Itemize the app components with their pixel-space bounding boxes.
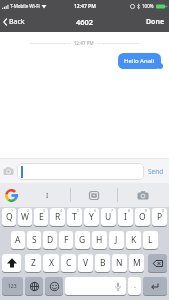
button[interactable]: U bbox=[101, 208, 116, 226]
button[interactable] bbox=[45, 277, 63, 295]
button[interactable] bbox=[25, 277, 43, 295]
button[interactable]: S bbox=[27, 231, 41, 249]
button[interactable]: V bbox=[78, 254, 93, 272]
staticText: S bbox=[32, 234, 37, 246]
staticText: T bbox=[72, 211, 77, 223]
button[interactable]: D bbox=[43, 231, 57, 249]
staticText: Back bbox=[9, 17, 25, 27]
staticText: 2 bbox=[27, 208, 30, 213]
button[interactable]: A bbox=[11, 231, 25, 249]
staticText: B bbox=[100, 257, 106, 269]
staticText: R bbox=[55, 211, 61, 223]
button[interactable]: G bbox=[75, 231, 90, 249]
button[interactable]: R bbox=[50, 208, 65, 226]
staticText: . bbox=[134, 281, 136, 291]
staticText: 6 bbox=[94, 208, 97, 213]
button[interactable]: W bbox=[18, 208, 32, 226]
button[interactable]: . bbox=[128, 277, 141, 295]
staticText: 12:47 PM bbox=[74, 3, 96, 10]
staticText: 9 bbox=[145, 208, 148, 213]
staticText: Send bbox=[148, 167, 164, 176]
staticText: I bbox=[124, 211, 127, 223]
button[interactable]: N bbox=[112, 254, 127, 272]
staticText: O bbox=[139, 211, 146, 223]
staticText: K bbox=[131, 234, 137, 246]
staticText: W bbox=[21, 211, 29, 223]
button[interactable]: L bbox=[143, 231, 158, 249]
staticText: Y bbox=[89, 211, 94, 223]
staticText: G bbox=[79, 234, 86, 246]
button[interactable]: Y bbox=[84, 208, 99, 226]
button[interactable] bbox=[2, 254, 21, 272]
staticText: L bbox=[148, 234, 153, 246]
button[interactable]: J bbox=[109, 231, 124, 249]
staticText: U bbox=[105, 211, 112, 223]
button[interactable] bbox=[137, 191, 149, 200]
button[interactable]: P bbox=[152, 208, 167, 226]
staticText: T-Mobile Wi-Fi bbox=[10, 3, 40, 9]
button[interactable]: Done bbox=[146, 17, 165, 27]
button[interactable]: Hello Anali bbox=[118, 53, 161, 69]
staticText: V bbox=[83, 257, 89, 269]
staticText: A bbox=[15, 234, 21, 246]
button[interactable] bbox=[89, 191, 99, 200]
button[interactable]: C bbox=[61, 254, 76, 272]
button[interactable]: K bbox=[126, 231, 141, 249]
staticText: E bbox=[39, 211, 44, 223]
staticText: 12:47 PM bbox=[74, 40, 94, 46]
button[interactable]: I bbox=[118, 208, 133, 226]
button[interactable]: F bbox=[59, 231, 73, 249]
button[interactable]: Z bbox=[25, 254, 41, 272]
button[interactable] bbox=[65, 277, 126, 295]
button[interactable]: M bbox=[129, 254, 144, 272]
staticText: 3 bbox=[43, 208, 46, 213]
staticText: Q bbox=[6, 211, 13, 223]
staticText: D bbox=[47, 234, 54, 246]
staticText: 4 bbox=[60, 208, 63, 213]
staticText: 0 bbox=[162, 208, 165, 213]
button[interactable]: X bbox=[43, 254, 59, 272]
staticText: 100% bbox=[142, 3, 154, 9]
button[interactable]: Send bbox=[148, 167, 166, 176]
staticText: N bbox=[116, 257, 123, 269]
staticText: Hello Anali bbox=[124, 57, 155, 65]
staticText: Done bbox=[146, 17, 165, 27]
button[interactable] bbox=[3, 167, 14, 175]
staticText: 1 bbox=[11, 208, 14, 213]
staticText: P bbox=[157, 211, 163, 223]
button[interactable]: B bbox=[95, 254, 110, 272]
staticText: F bbox=[64, 234, 69, 246]
staticText: C bbox=[66, 257, 72, 269]
staticText: 123 bbox=[8, 283, 17, 290]
button[interactable] bbox=[148, 254, 167, 272]
staticText: 5 bbox=[77, 208, 80, 213]
button[interactable]: Back bbox=[3, 17, 25, 27]
staticText: 7 bbox=[111, 208, 114, 213]
button[interactable]: E bbox=[34, 208, 48, 226]
button[interactable]: T bbox=[67, 208, 82, 226]
button[interactable]: Q bbox=[2, 208, 16, 226]
staticText: J bbox=[115, 234, 118, 246]
button[interactable] bbox=[143, 277, 167, 295]
staticText: 8 bbox=[128, 208, 131, 213]
button[interactable]: H bbox=[92, 231, 107, 249]
staticText: H bbox=[96, 234, 103, 246]
button[interactable]: I bbox=[40, 183, 54, 207]
staticText: Z bbox=[31, 257, 36, 269]
staticText: M bbox=[133, 257, 141, 269]
staticText: X bbox=[49, 257, 54, 269]
staticText: 4602 bbox=[76, 17, 94, 27]
button[interactable]: O bbox=[135, 208, 150, 226]
button[interactable]: 123 bbox=[2, 277, 23, 295]
staticText: I bbox=[46, 191, 49, 200]
